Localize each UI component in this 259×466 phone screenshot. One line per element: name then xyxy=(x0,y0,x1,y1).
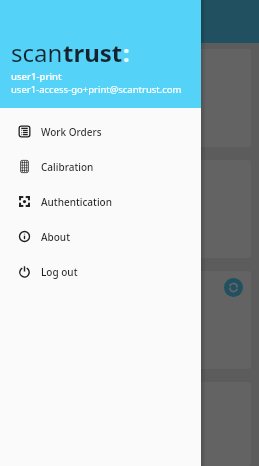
button[interactable] xyxy=(8,382,251,466)
button[interactable]: Log out xyxy=(0,254,201,289)
button[interactable]: Sync xyxy=(224,278,243,297)
button[interactable]: Calibration xyxy=(0,149,201,184)
staticText: trust xyxy=(63,36,123,69)
button[interactable] xyxy=(8,271,251,369)
button[interactable] xyxy=(8,49,251,147)
staticText: user1-access-go+print@scantrust.com xyxy=(11,83,182,96)
button[interactable] xyxy=(8,160,251,258)
staticText: About xyxy=(41,230,70,244)
button[interactable]: About xyxy=(0,219,201,254)
staticText: Authentication xyxy=(41,195,112,209)
staticText: Work Orders xyxy=(41,125,102,139)
button[interactable]: Authentication xyxy=(0,184,201,219)
staticText: Calibration xyxy=(41,160,94,174)
staticText: user1-print xyxy=(11,70,62,83)
staticText: Log out xyxy=(41,265,78,279)
button[interactable]: Work Orders xyxy=(0,114,201,149)
staticText: : xyxy=(123,36,130,69)
staticText: scan xyxy=(11,36,63,69)
